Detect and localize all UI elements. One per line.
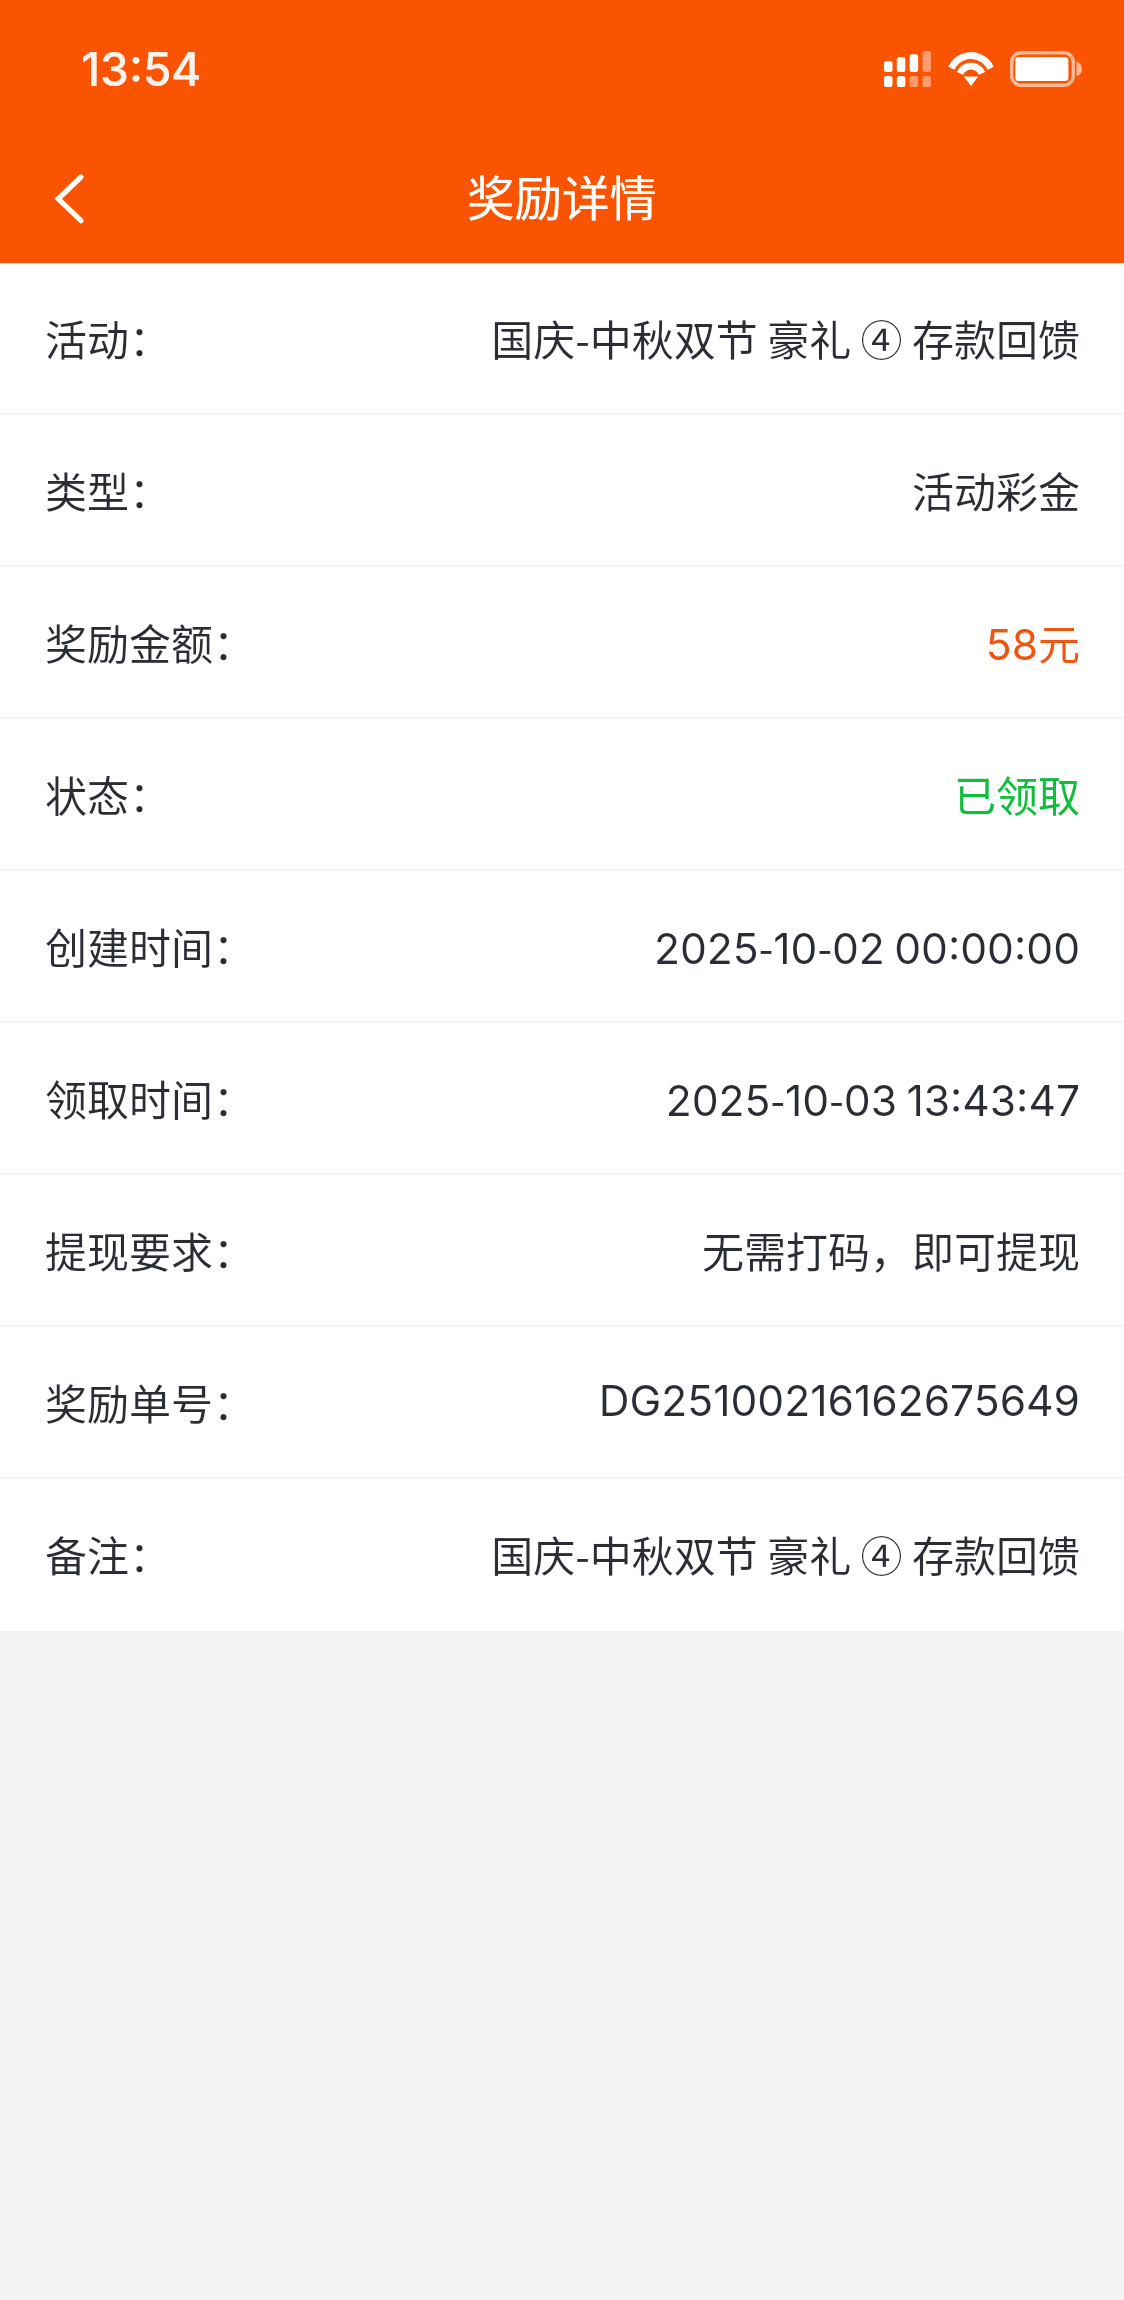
button[interactable]: 奖励单号： (0, 1327, 1124, 1479)
button[interactable]: 状态： (0, 719, 1124, 871)
staticText: 奖励详情 (467, 161, 657, 230)
staticText: 已领取 (180, 763, 1080, 824)
staticText: 奖励单号： (45, 1371, 256, 1432)
staticText: 国庆-中秋双节 豪礼 ④ 存款回馈 (180, 1523, 1080, 1584)
staticText: 类型： (45, 459, 172, 520)
button[interactable]: 活动： (0, 263, 1124, 415)
staticText: 创建时间： (45, 915, 256, 976)
staticText: 活动彩金 (180, 459, 1080, 520)
staticText: 提现要求： (45, 1219, 256, 1280)
button[interactable]: 类型： (0, 415, 1124, 567)
staticText: 无需打码，即可提现 (264, 1219, 1080, 1280)
button[interactable]: Back (0, 120, 139, 263)
staticText: 奖励金额： (45, 611, 256, 672)
staticText: DG25100216162675649 (264, 1375, 1080, 1427)
button[interactable]: 创建时间： (0, 871, 1124, 1023)
staticText: 状态： (45, 763, 172, 824)
staticText: 活动： (45, 307, 172, 368)
button[interactable]: 奖励金额： (0, 567, 1124, 719)
staticText: 备注： (45, 1523, 172, 1584)
staticText: 2025-10-03 13:43:47 (264, 1067, 1080, 1128)
staticText: 领取时间： (45, 1067, 256, 1128)
staticText: 国庆-中秋双节 豪礼 ④ 存款回馈 (180, 307, 1080, 368)
staticText: 2025-10-02 00:00:00 (264, 915, 1080, 976)
button[interactable]: 备注： (0, 1479, 1124, 1631)
button[interactable]: 领取时间： (0, 1023, 1124, 1175)
button[interactable]: 提现要求： (0, 1175, 1124, 1327)
staticText: 13:54 (81, 41, 202, 97)
staticText: 58元 (264, 611, 1080, 672)
